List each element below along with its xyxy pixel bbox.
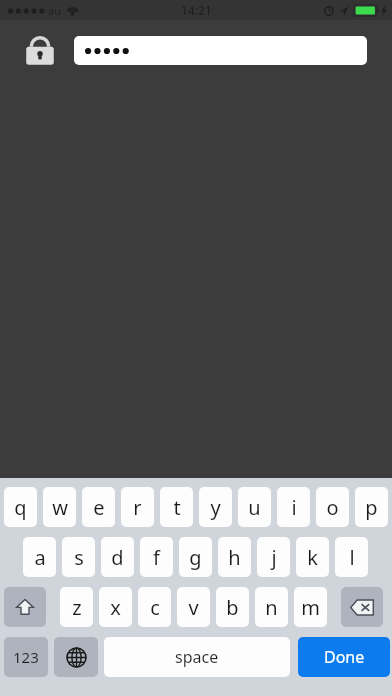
other: Locked [24, 30, 56, 70]
staticText: s [74, 544, 84, 571]
staticText: a [34, 544, 46, 571]
staticText: p [365, 494, 378, 521]
button[interactable]: Change keyboard language [54, 637, 98, 677]
button[interactable]: s [62, 537, 95, 577]
staticText: e [93, 494, 105, 521]
staticText: g [189, 544, 202, 571]
button[interactable]: u [238, 487, 271, 527]
staticText: c [150, 594, 160, 621]
staticText: f [153, 544, 160, 571]
button[interactable]: x [99, 587, 132, 627]
staticText: u [248, 494, 261, 521]
staticText: x [110, 594, 121, 621]
staticText: q [14, 494, 27, 521]
staticText: i [291, 494, 297, 521]
button[interactable]: a [23, 537, 56, 577]
button[interactable]: t [160, 487, 193, 527]
button[interactable]: b [216, 587, 249, 627]
button[interactable]: r [121, 487, 154, 527]
button[interactable]: k [296, 537, 329, 577]
button[interactable]: l [335, 537, 368, 577]
staticText: t [173, 494, 181, 521]
staticText: y [210, 494, 221, 521]
staticText: 14:21 [181, 2, 212, 18]
button[interactable]: z [60, 587, 93, 627]
staticText: l [349, 544, 355, 571]
staticText: w [52, 494, 68, 521]
button[interactable]: c [138, 587, 171, 627]
staticText: Done [324, 646, 365, 668]
staticText: au [48, 3, 61, 18]
button[interactable]: m [294, 587, 327, 627]
staticText: z [72, 594, 82, 621]
staticText: j [271, 544, 277, 571]
staticText: b [226, 594, 239, 621]
button[interactable]: p [355, 487, 388, 527]
button[interactable]: i [277, 487, 310, 527]
button[interactable]: v [177, 587, 210, 627]
button[interactable]: g [179, 537, 212, 577]
button[interactable]: Backspace [341, 587, 383, 627]
button[interactable]: Done [298, 637, 390, 677]
button[interactable]: d [101, 537, 134, 577]
staticText: h [228, 544, 241, 571]
button[interactable] [74, 36, 367, 65]
button[interactable]: o [316, 487, 349, 527]
button[interactable]: w [43, 487, 76, 527]
staticText: n [265, 594, 278, 621]
button[interactable]: e [82, 487, 115, 527]
staticText: v [188, 594, 199, 621]
button[interactable]: space [104, 637, 290, 677]
button[interactable]: q [4, 487, 37, 527]
staticText: m [301, 594, 320, 621]
button[interactable]: f [140, 537, 173, 577]
button[interactable]: y [199, 487, 232, 527]
button[interactable]: h [218, 537, 251, 577]
staticText: o [326, 494, 339, 521]
staticText: k [307, 544, 318, 571]
staticText: r [133, 494, 142, 521]
button[interactable]: Shift [4, 587, 46, 627]
staticText: 123 [13, 647, 39, 667]
button[interactable]: n [255, 587, 288, 627]
button[interactable]: j [257, 537, 290, 577]
staticText: d [111, 544, 124, 571]
staticText: space [175, 646, 219, 668]
button[interactable]: 123 [4, 637, 48, 677]
